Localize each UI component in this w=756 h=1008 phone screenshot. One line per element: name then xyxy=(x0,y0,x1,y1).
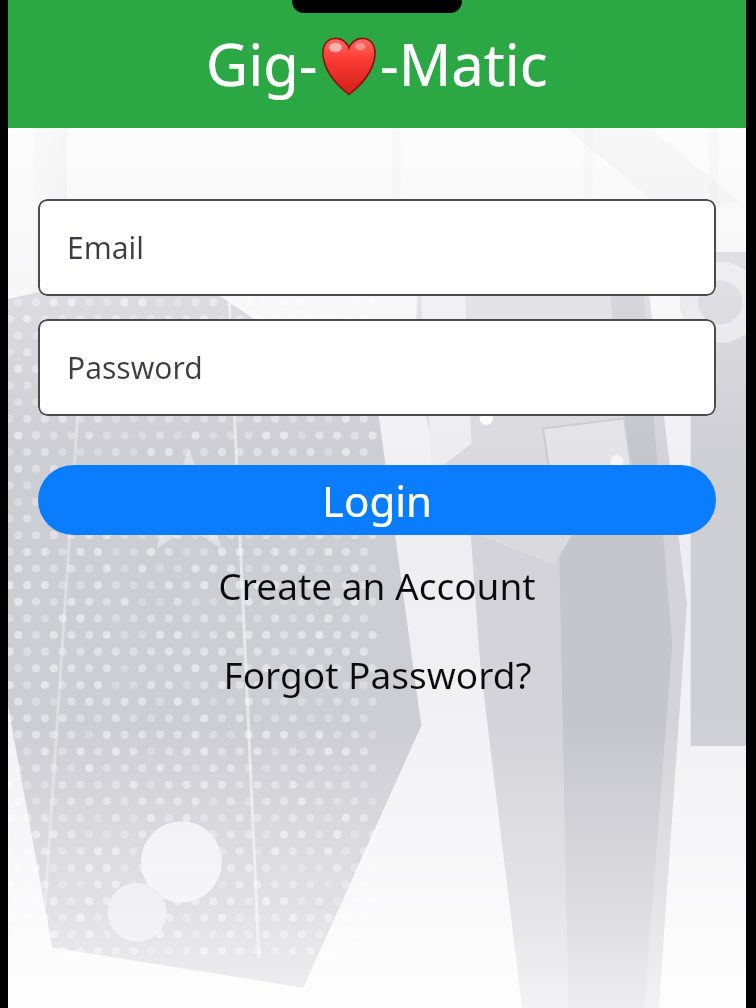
button[interactable]: Forgot Password? xyxy=(8,646,746,702)
staticText: Password xyxy=(67,347,203,388)
staticText: Create an Account xyxy=(218,560,536,610)
button[interactable]: Password xyxy=(38,319,716,416)
button[interactable]: Create an Account xyxy=(8,557,746,613)
staticText: Gig- xyxy=(206,24,318,103)
staticText: Email xyxy=(67,227,145,268)
staticText: -Matic xyxy=(380,24,548,103)
staticText: Login xyxy=(322,472,433,529)
button[interactable]: Email xyxy=(38,199,716,296)
staticText: Forgot Password? xyxy=(223,649,532,699)
button[interactable]: Login xyxy=(38,465,716,535)
